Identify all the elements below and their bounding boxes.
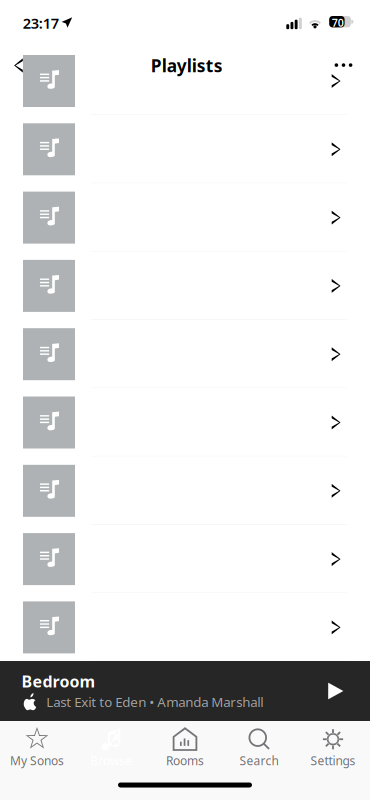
staticText: Search (239, 753, 278, 769)
staticText: Settings (310, 753, 355, 769)
staticText: 23:17 (23, 13, 59, 33)
button[interactable] (0, 47, 370, 115)
staticText: Playlists (151, 54, 223, 77)
button[interactable]: Bedroom (0, 661, 370, 721)
button[interactable] (0, 457, 370, 525)
button[interactable]: Back (5, 47, 32, 84)
button[interactable]: Rooms (148, 721, 222, 779)
button[interactable] (0, 252, 370, 320)
staticText: Rooms (166, 753, 204, 769)
staticText: My Sonos (10, 753, 64, 769)
button[interactable] (0, 183, 370, 252)
staticText: Last Exit to Eden • Amanda Marshall (46, 693, 263, 711)
button[interactable]: Settings (296, 721, 370, 779)
button[interactable] (0, 525, 370, 593)
button[interactable] (0, 320, 370, 388)
button[interactable] (0, 115, 370, 183)
staticText: Bedroom (22, 671, 96, 692)
button[interactable]: Search (222, 721, 296, 779)
button[interactable]: Play (315, 670, 356, 712)
button[interactable]: My Sonos (0, 721, 74, 779)
button[interactable]: More options (324, 50, 363, 80)
button[interactable] (0, 388, 370, 457)
button[interactable] (0, 593, 370, 661)
staticText: 70 (332, 15, 344, 30)
